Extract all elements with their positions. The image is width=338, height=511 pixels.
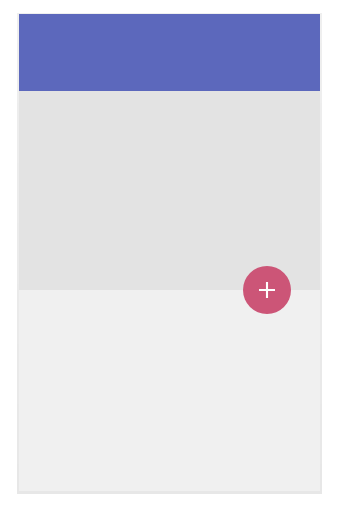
button[interactable]: Add xyxy=(243,266,291,314)
